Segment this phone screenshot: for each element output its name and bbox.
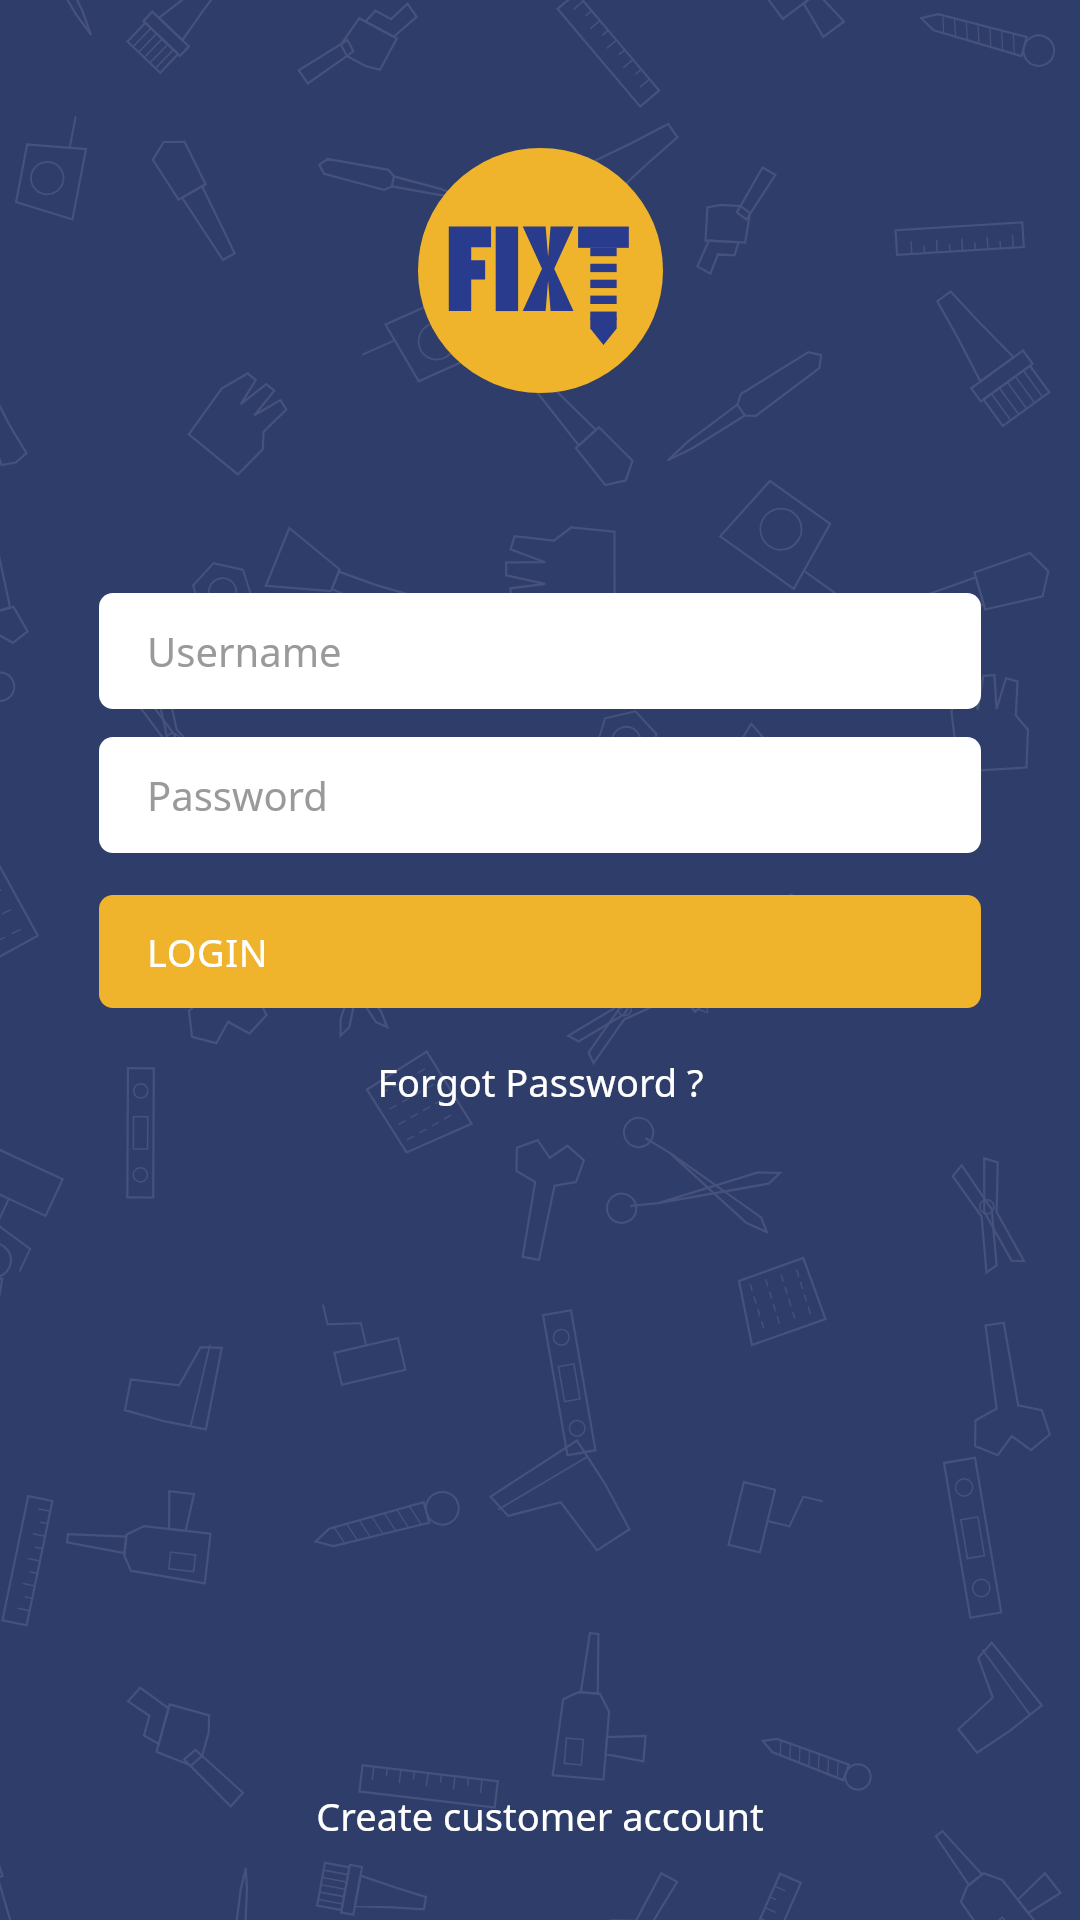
staticText: Create customer account xyxy=(316,1790,764,1842)
button[interactable]: LOGIN xyxy=(99,895,981,1008)
button[interactable]: Password xyxy=(99,737,981,853)
staticText: Username xyxy=(147,624,342,678)
staticText: Forgot Password ? xyxy=(377,1056,704,1108)
staticText: Password xyxy=(147,768,328,822)
button[interactable]: Create customer account xyxy=(292,1778,788,1854)
button[interactable]: Username xyxy=(99,593,981,709)
staticText: LOGIN xyxy=(147,926,269,978)
button[interactable]: Forgot Password ? xyxy=(353,1046,728,1118)
